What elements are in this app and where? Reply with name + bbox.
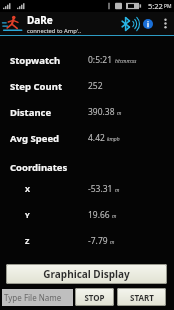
button[interactable]: Y [0, 202, 174, 228]
staticText: m [110, 239, 115, 246]
staticText: m [117, 110, 122, 117]
button[interactable]: Information [138, 14, 158, 34]
button[interactable]: Step Count [0, 73, 174, 99]
button[interactable]: Type File Name [2, 289, 73, 306]
button[interactable]: Stopwatch [0, 47, 174, 73]
button[interactable]: Distance [0, 99, 174, 125]
staticText: 390.38 [88, 106, 115, 118]
staticText: 0:5:21 [88, 54, 113, 66]
staticText: Y [25, 210, 30, 220]
staticText: m [115, 187, 120, 194]
button[interactable]: Graphical Display [6, 264, 167, 284]
staticText: Avg Speed [10, 132, 60, 145]
button[interactable]: Avg Speed [0, 125, 174, 151]
button[interactable]: STOP [75, 288, 114, 306]
button[interactable]: START [117, 288, 166, 306]
button[interactable]: X [0, 176, 174, 202]
button[interactable]: Z [0, 228, 174, 254]
staticText: Type File Name [4, 292, 62, 303]
staticText: -7.79 [88, 235, 108, 247]
staticText: m [112, 213, 117, 220]
staticText: kmph [107, 136, 120, 143]
staticText: PM [164, 3, 172, 10]
staticText: Z [25, 236, 30, 246]
staticText: Distance [10, 106, 52, 119]
button[interactable]: More options [158, 12, 172, 35]
staticText: hh:mm:ss [115, 58, 137, 65]
staticText: Coordinates [10, 161, 68, 174]
staticText: Stopwatch [10, 54, 61, 67]
staticText: connected to Amp'.. [27, 27, 82, 35]
button[interactable]: Bluetooth connection [118, 14, 138, 34]
staticText: X [25, 184, 31, 194]
staticText: 252 [88, 80, 103, 92]
staticText: DaRe [27, 13, 53, 27]
staticText: 5:22 [148, 1, 163, 11]
staticText: START [130, 292, 154, 303]
staticText: -53.31 [88, 183, 113, 195]
staticText: STOP [84, 292, 105, 303]
staticText: 4.42 [88, 132, 105, 144]
staticText: Step Count [10, 80, 63, 93]
staticText: 19.66 [88, 209, 110, 221]
staticText: Graphical Display [43, 267, 130, 281]
